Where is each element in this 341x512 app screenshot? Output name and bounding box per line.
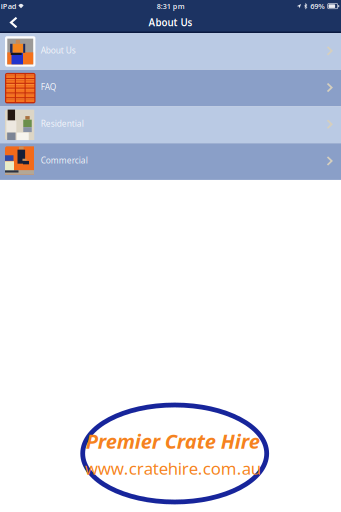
staticText: Commercial	[41, 154, 88, 166]
button[interactable]: FAQ	[0, 70, 341, 106]
staticText: 69%	[310, 1, 325, 11]
button[interactable]: Commercial	[0, 143, 341, 180]
staticText: www.cratehire.com.au	[85, 457, 261, 480]
staticText: About Us	[41, 44, 76, 56]
staticText: FAQ	[41, 81, 57, 92]
button[interactable]: About Us	[0, 33, 341, 70]
button[interactable]: Residential	[0, 106, 341, 143]
staticText: Premier Crate Hire	[86, 427, 260, 455]
staticText: About Us	[148, 16, 192, 29]
staticText: iPad	[1, 1, 17, 11]
staticText: Residential	[41, 118, 84, 129]
staticText: 8:31 pm	[157, 1, 185, 11]
button[interactable]: Back	[0, 14, 26, 31]
